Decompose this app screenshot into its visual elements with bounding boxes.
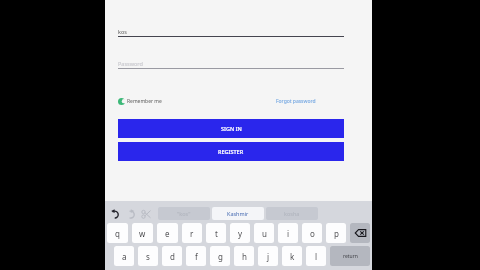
button[interactable]: Kashmir — [212, 207, 264, 220]
button[interactable]: f — [186, 246, 206, 266]
staticText: q — [115, 228, 120, 239]
button[interactable]: s — [138, 246, 158, 266]
staticText: kos — [118, 28, 127, 35]
staticText: d — [170, 251, 175, 262]
staticText: Password — [118, 60, 143, 67]
staticText: i — [287, 228, 290, 239]
button[interactable]: REGISTER — [118, 142, 344, 161]
button[interactable]: Forgot password — [276, 96, 316, 106]
button[interactable]: Remember me — [118, 98, 162, 105]
staticText: SIGN IN — [221, 125, 242, 132]
button[interactable]: o — [302, 223, 322, 243]
staticText: e — [165, 228, 170, 239]
staticText: Kashmir — [227, 210, 249, 217]
button[interactable]: Redo — [122, 206, 138, 221]
staticText: s — [146, 251, 150, 262]
button[interactable]: g — [210, 246, 230, 266]
staticText: Remember me — [127, 98, 162, 105]
button[interactable]: a — [114, 246, 134, 266]
button[interactable]: Paste — [138, 206, 154, 221]
staticText: j — [267, 251, 270, 262]
button[interactable]: j — [258, 246, 278, 266]
button[interactable]: r — [182, 223, 202, 243]
button[interactable]: Undo — [106, 206, 122, 221]
button[interactable]: d — [162, 246, 182, 266]
staticText: h — [242, 251, 247, 262]
button[interactable]: return — [330, 246, 370, 266]
staticText: r — [190, 228, 194, 239]
staticText: g — [218, 251, 223, 262]
staticText: k — [290, 251, 295, 262]
button[interactable]: e — [157, 223, 178, 243]
button[interactable]: l — [306, 246, 326, 266]
staticText: l — [315, 251, 318, 262]
staticText: p — [334, 228, 339, 239]
button[interactable]: q — [107, 223, 128, 243]
staticText: y — [238, 228, 243, 239]
staticText: REGISTER — [218, 148, 244, 155]
staticText: Forgot password — [276, 98, 316, 105]
staticText: f — [195, 251, 198, 262]
button[interactable]: w — [132, 223, 153, 243]
button[interactable]: p — [326, 223, 346, 243]
staticText: o — [310, 228, 315, 239]
staticText: a — [122, 251, 127, 262]
button[interactable]: h — [234, 246, 254, 266]
button[interactable]: SIGN IN — [118, 119, 344, 138]
staticText: t — [215, 228, 218, 239]
button[interactable]: Backspace — [350, 223, 370, 243]
staticText: w — [139, 228, 146, 239]
button[interactable]: i — [278, 223, 298, 243]
button[interactable]: y — [230, 223, 250, 243]
button[interactable]: k — [282, 246, 302, 266]
staticText: kosha — [284, 210, 300, 217]
staticText: u — [262, 228, 267, 239]
button[interactable]: t — [206, 223, 226, 243]
staticText: "kos" — [177, 210, 191, 217]
button[interactable]: u — [254, 223, 274, 243]
staticText: return — [343, 253, 358, 260]
